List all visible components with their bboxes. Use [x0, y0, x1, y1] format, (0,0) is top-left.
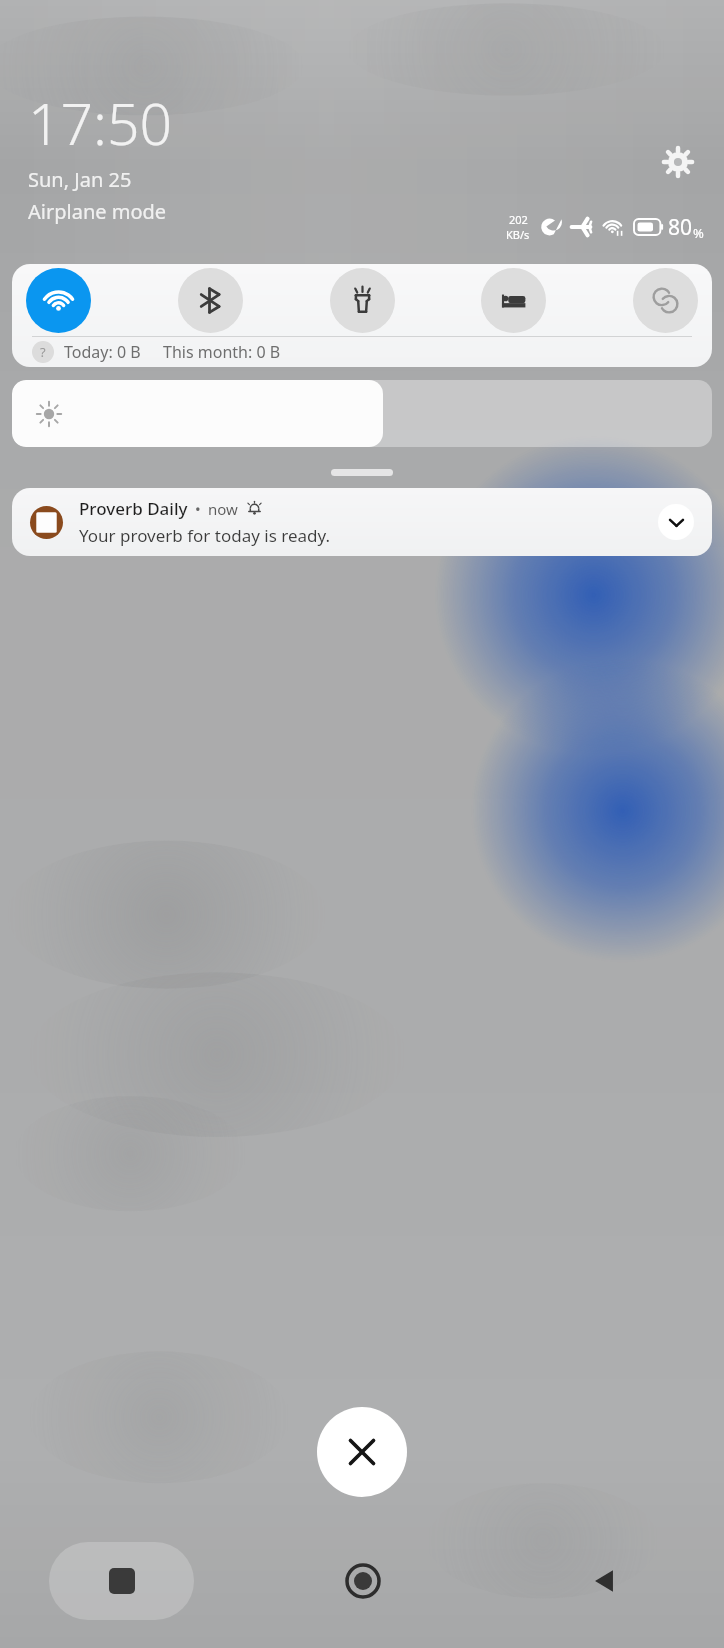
button[interactable]: Close notification shade — [317, 1407, 407, 1497]
staticText: KB/s — [506, 227, 530, 242]
button[interactable]: Home — [331, 1549, 395, 1613]
staticText: 202 — [509, 212, 528, 227]
button[interactable]: Bluetooth — [178, 268, 243, 333]
staticText: 80 — [668, 213, 693, 242]
button[interactable]: Settings — [656, 140, 700, 184]
staticText: Proverb Daily — [79, 497, 188, 520]
staticText: % — [693, 224, 704, 242]
staticText: This month: 0 B — [163, 341, 281, 363]
button[interactable]: Back — [572, 1549, 636, 1613]
button[interactable]: Proverb Daily — [12, 488, 712, 556]
staticText: ? — [40, 343, 46, 361]
button[interactable]: Expand notification — [658, 504, 694, 540]
staticText: Sun, Jan 25 — [28, 166, 132, 193]
button[interactable]: Flashlight — [330, 268, 395, 333]
button[interactable]: Recent apps — [49, 1542, 194, 1620]
button[interactable]: Sleep mode — [481, 268, 546, 333]
staticText: 17:50 — [28, 84, 173, 162]
button[interactable]: Brightness — [12, 380, 712, 447]
button[interactable]: Wi-Fi — [26, 268, 91, 333]
staticText: Airplane mode — [28, 198, 167, 225]
staticText: Your proverb for today is ready. — [79, 524, 331, 547]
staticText: Today: 0 B — [64, 341, 141, 363]
staticText: now — [208, 499, 238, 519]
button[interactable]: Sync — [633, 268, 698, 333]
staticText: • — [195, 499, 201, 519]
